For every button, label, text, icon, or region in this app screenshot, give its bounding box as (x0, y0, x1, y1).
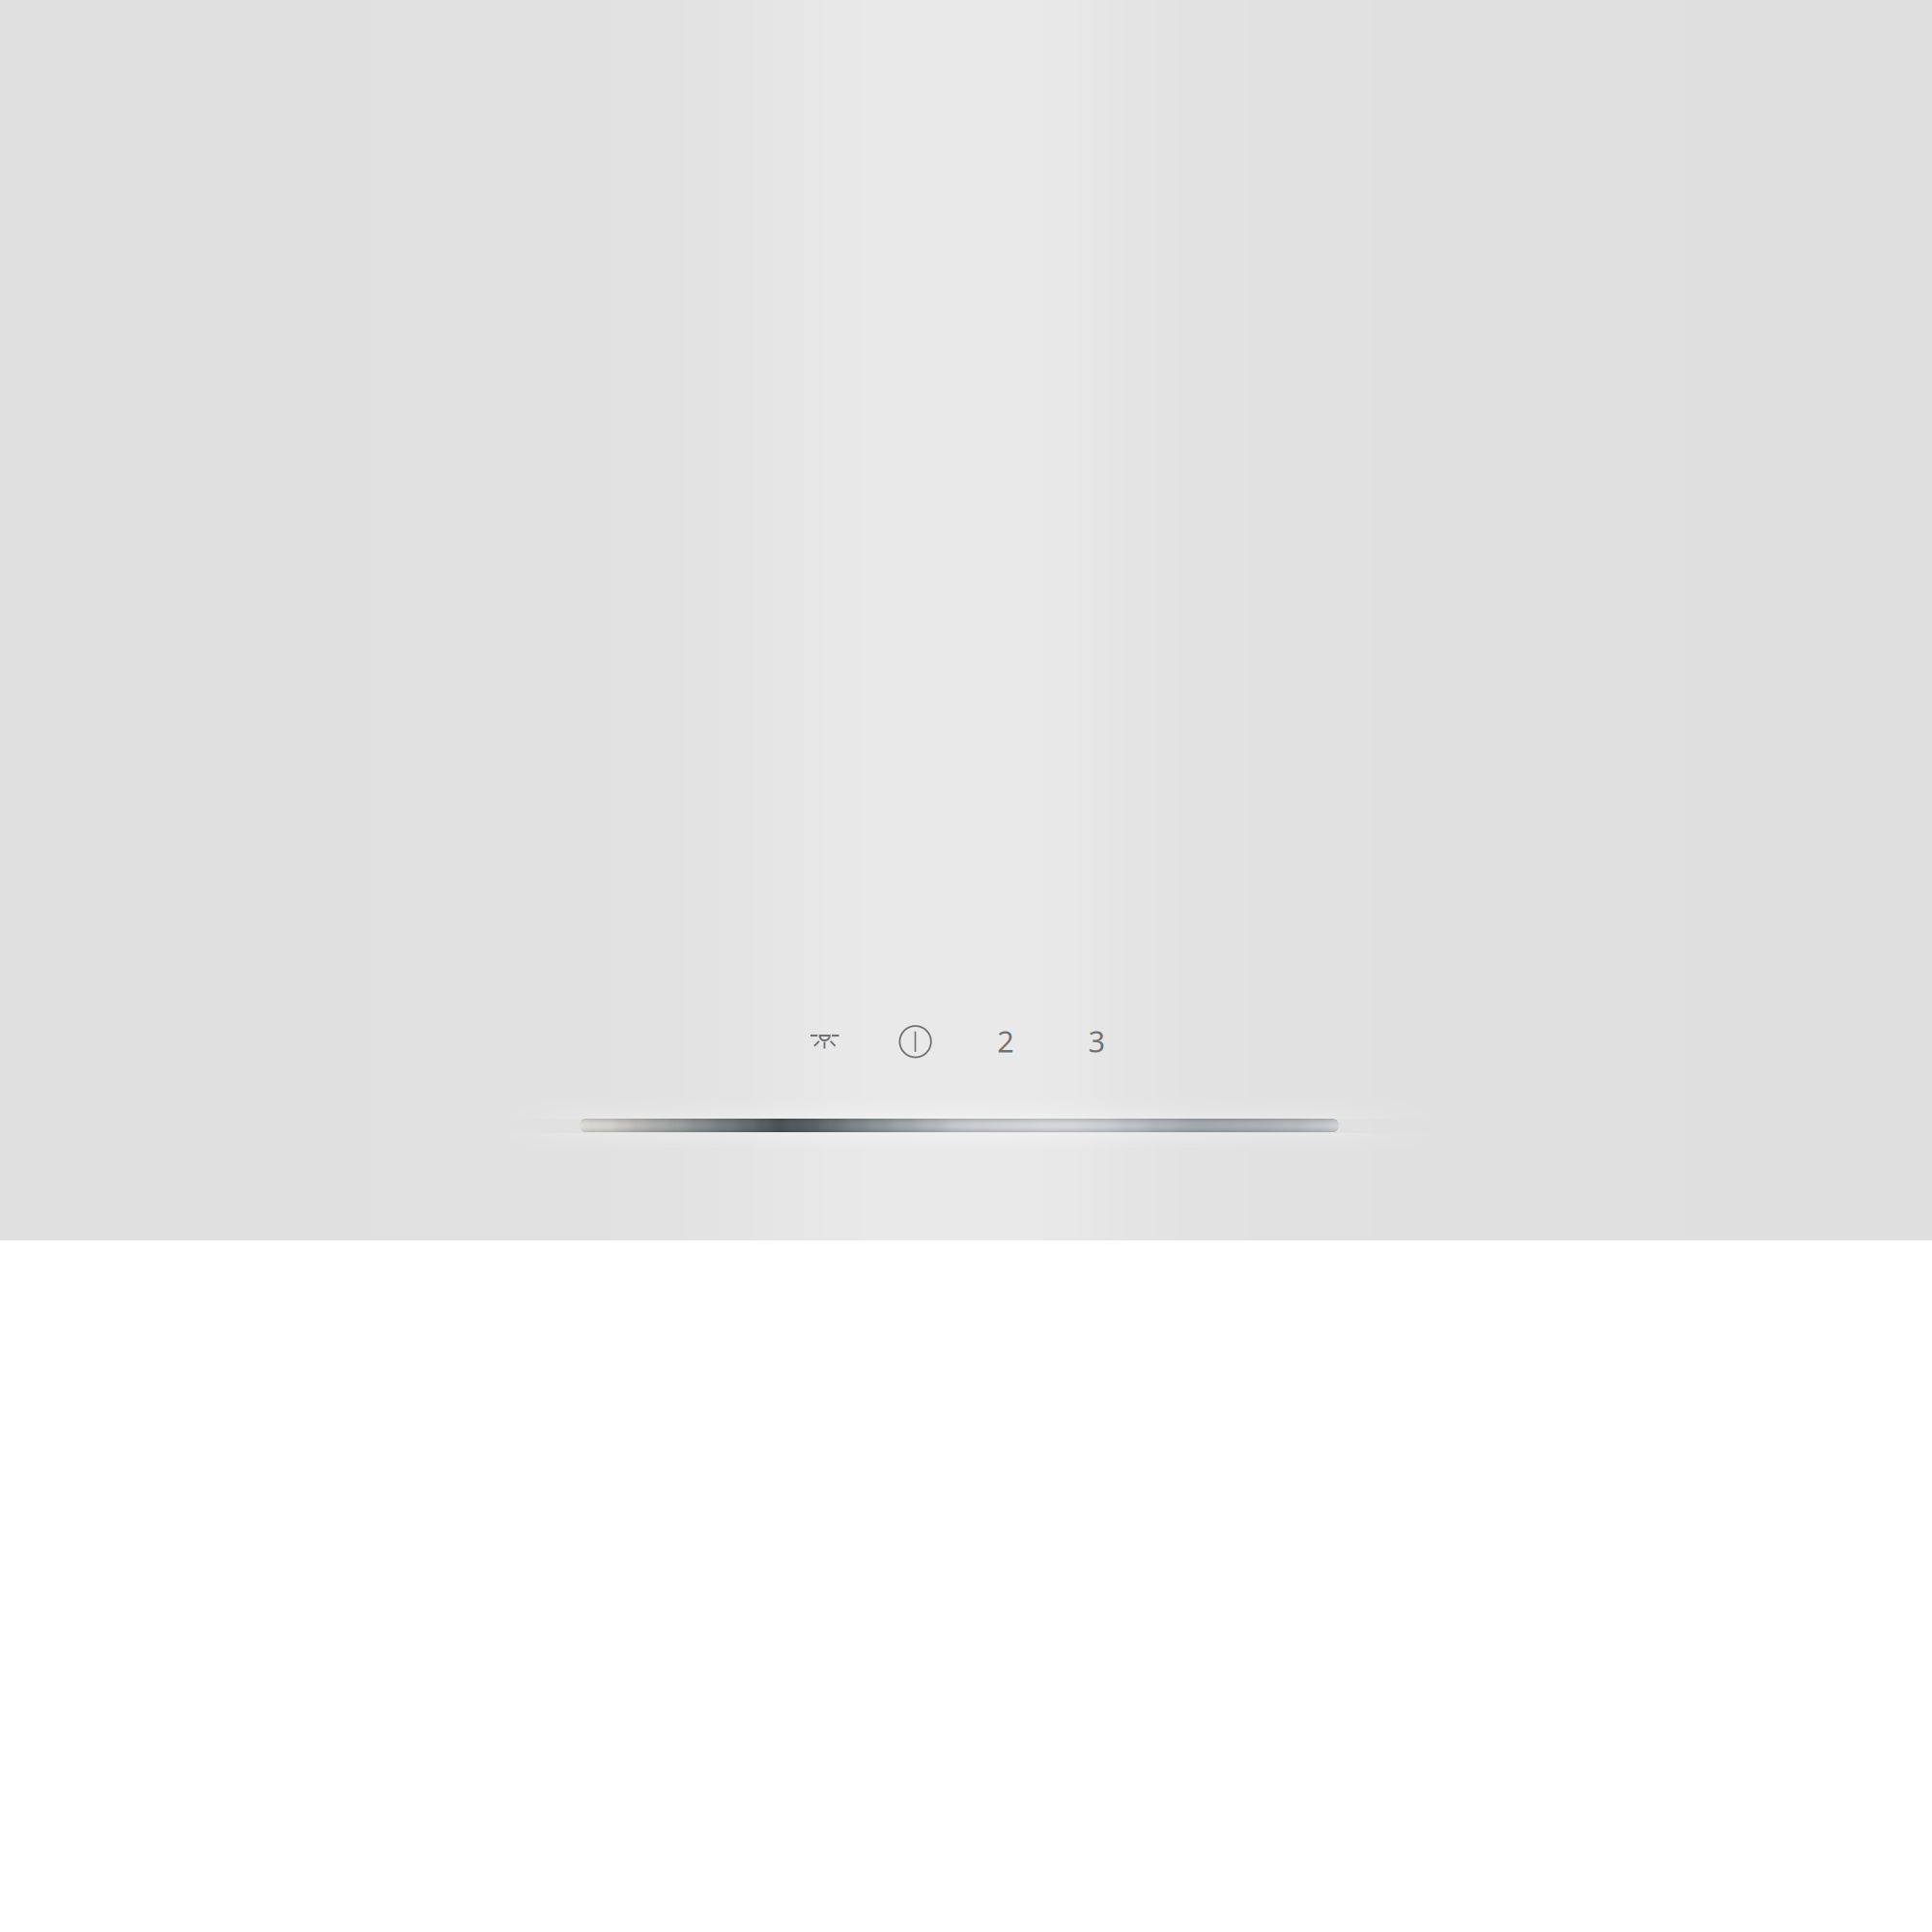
button[interactable]: Fan speed 2 (964, 999, 1047, 1082)
staticText: 3 (1088, 1021, 1105, 1060)
button[interactable]: Fan speed 3 (1055, 999, 1138, 1082)
button[interactable]: Power, fan speed 1 (874, 1000, 957, 1083)
staticText: 2 (997, 1021, 1015, 1060)
button[interactable]: Hood light (783, 999, 866, 1082)
